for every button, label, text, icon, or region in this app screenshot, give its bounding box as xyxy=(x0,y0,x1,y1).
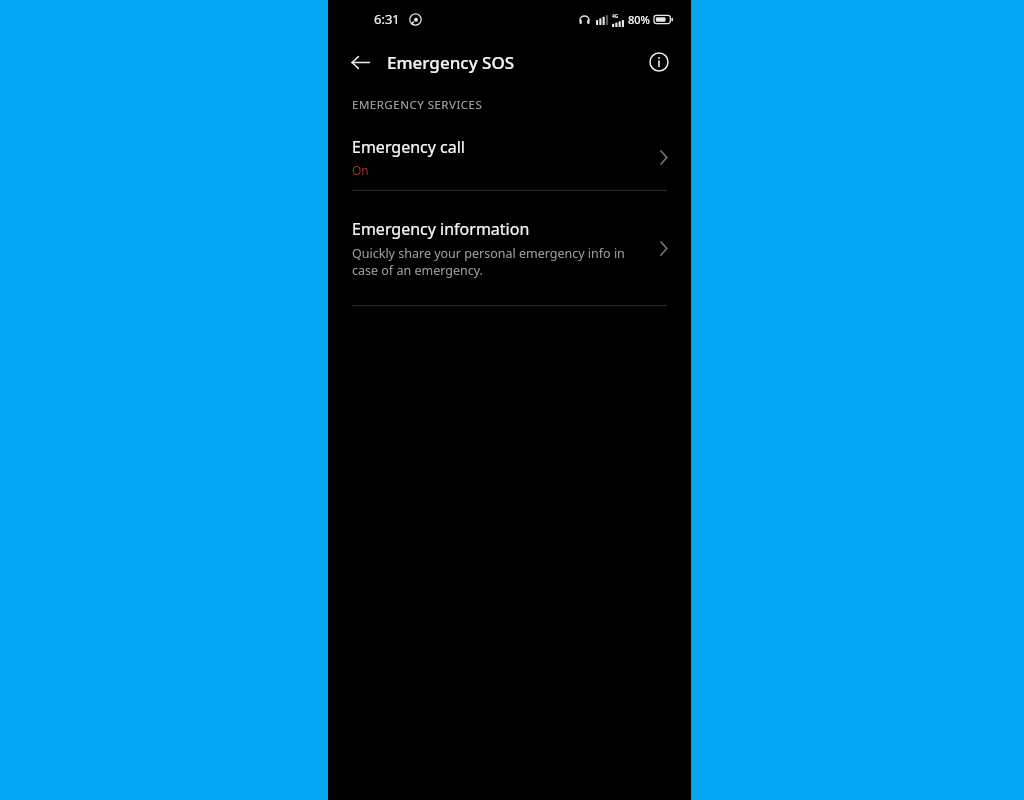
staticText: 4G xyxy=(612,13,619,20)
button[interactable]: Emergency call xyxy=(328,124,691,190)
staticText: Emergency SOS xyxy=(387,51,515,74)
staticText: Emergency information xyxy=(352,218,530,240)
staticText: 6:31 xyxy=(374,10,400,28)
button[interactable]: Info xyxy=(643,46,675,78)
staticText: 80% xyxy=(628,12,650,27)
staticText: Quickly share your personal emergency in… xyxy=(352,245,640,279)
button[interactable]: Back xyxy=(344,46,376,78)
staticText: Emergency call xyxy=(352,136,465,158)
button[interactable]: Emergency information xyxy=(328,191,691,305)
staticText: On xyxy=(352,162,369,178)
staticText: EMERGENCY SERVICES xyxy=(352,97,483,113)
